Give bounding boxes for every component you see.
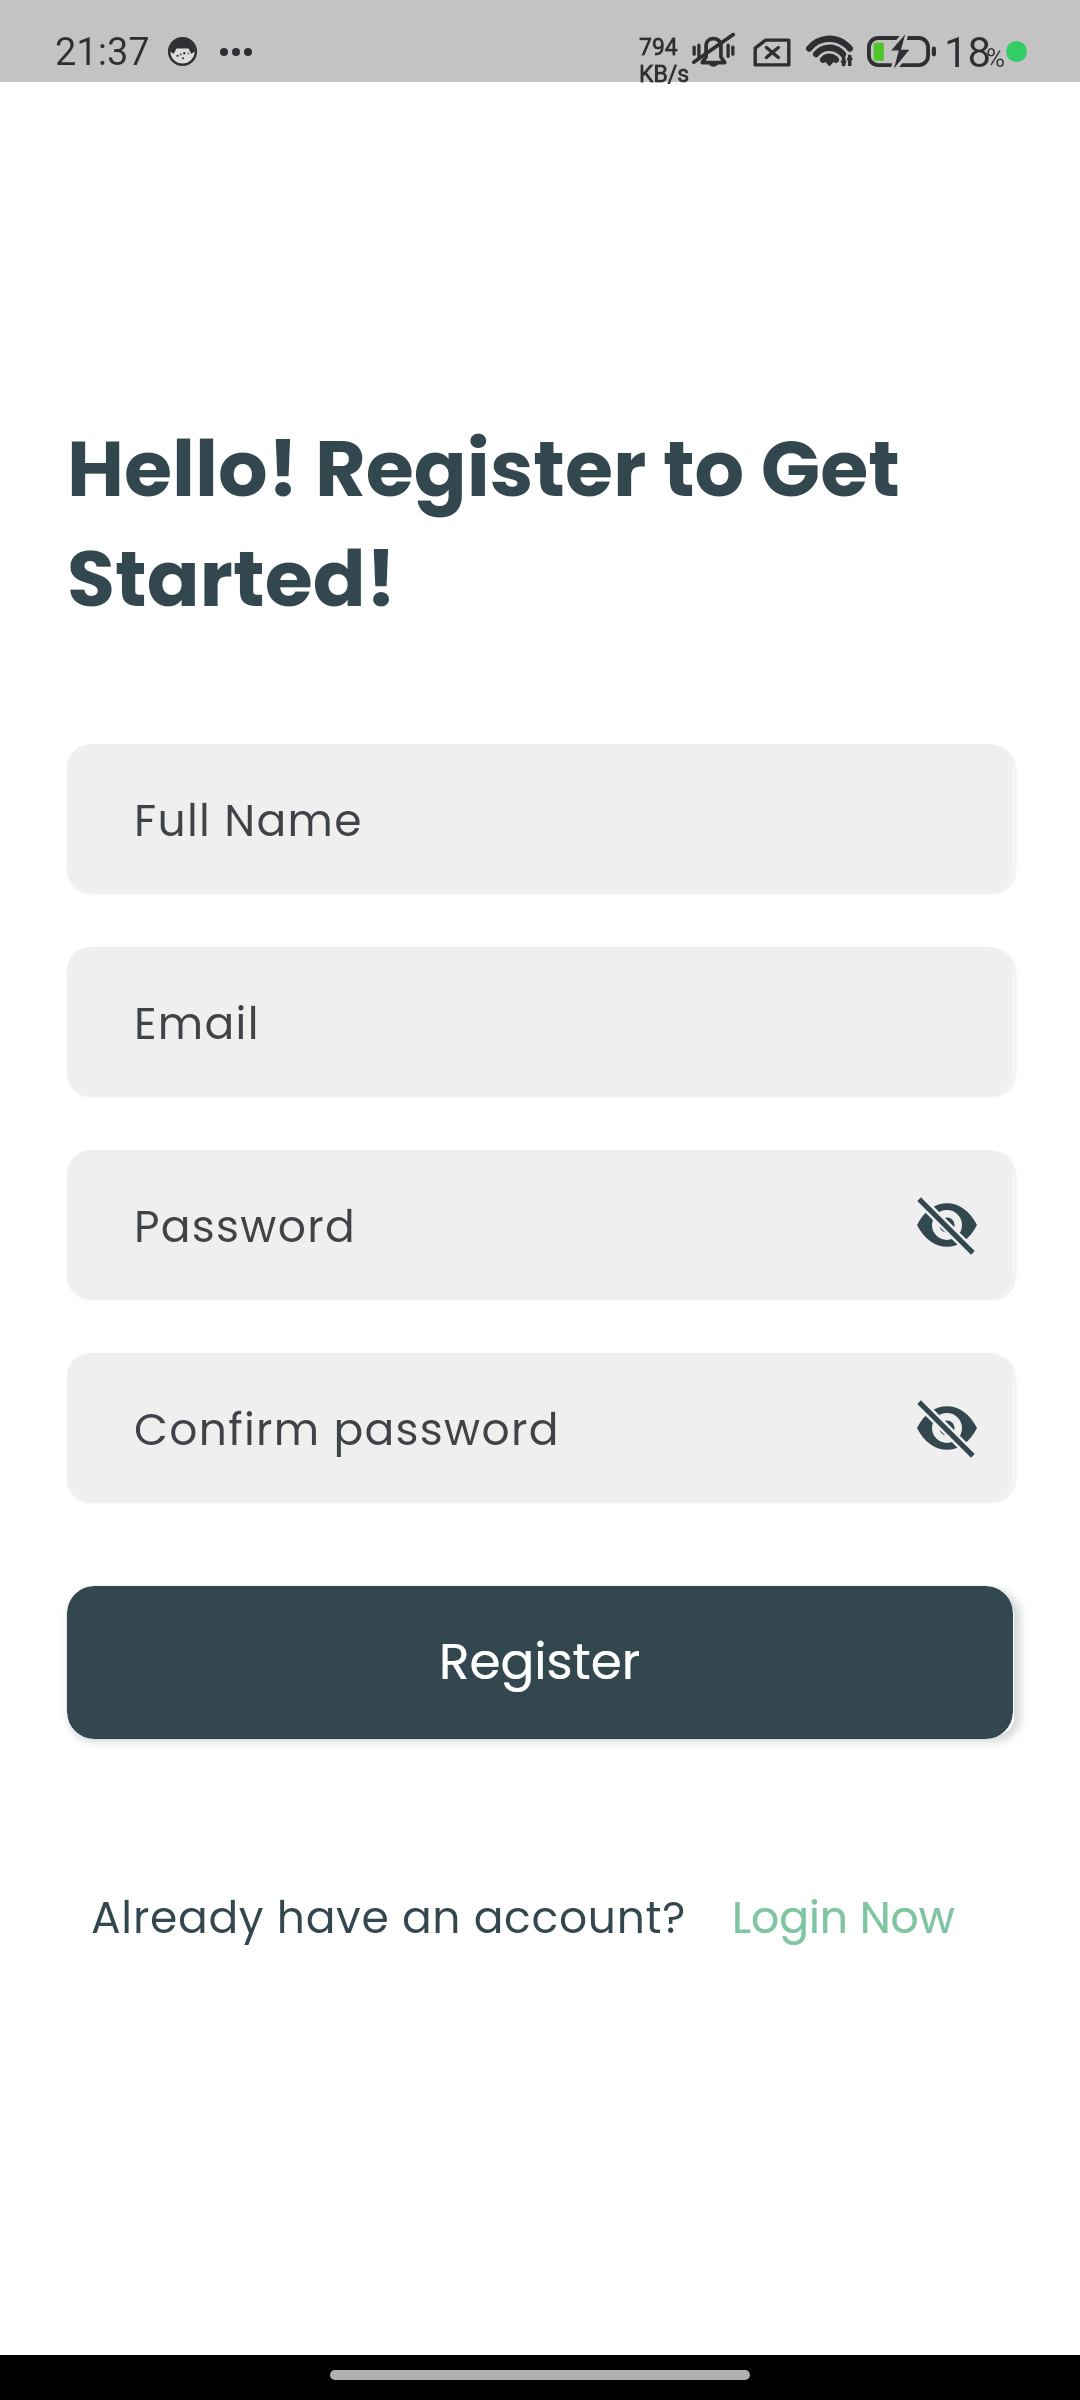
staticText: Hello! Register to Get Started! [67,415,972,635]
button[interactable]: Confirm password [67,1353,1013,1502]
staticText: Already have an account? [91,1892,686,1948]
staticText: Register [439,1635,641,1695]
staticText: KB/s [639,61,690,88]
button[interactable]: Toggle password visibility [901,1179,993,1271]
button[interactable]: Register [67,1586,1013,1739]
staticText: % [986,45,1006,73]
staticText: Email [134,998,260,1054]
staticText: Confirm password [134,1404,560,1460]
staticText: Login Now [732,1892,955,1948]
staticText: 794 [639,34,678,61]
button[interactable]: Full Name [67,744,1013,893]
button[interactable]: Email [67,947,1013,1096]
staticText: 21:37 [55,30,150,74]
staticText: 18 [944,31,992,77]
button[interactable]: Login Now [732,1892,955,1948]
button[interactable]: Password [67,1150,1013,1299]
staticText: Password [134,1201,356,1257]
staticText: Full Name [134,795,363,851]
button[interactable]: Toggle password visibility [901,1382,993,1474]
